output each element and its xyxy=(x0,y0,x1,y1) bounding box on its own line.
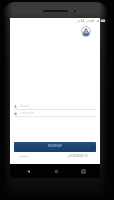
button[interactable]: ¿OLVIDASTE TU CONTRASEÑA? xyxy=(64,154,92,158)
staticText: REGISTRATE xyxy=(19,154,29,158)
button[interactable]: Recent apps xyxy=(79,167,87,175)
button[interactable]: INGRESAR xyxy=(14,142,96,152)
staticText: INGRESAR xyxy=(48,144,62,148)
button[interactable]: Back xyxy=(24,167,32,175)
staticText: Contraseña xyxy=(20,111,34,115)
button[interactable]: Usuario xyxy=(14,103,96,110)
staticText: ¿OLVIDASTE TU CONTRASEÑA? xyxy=(64,154,92,158)
button[interactable]: Contraseña xyxy=(14,110,96,117)
button[interactable]: Home xyxy=(52,167,60,175)
button[interactable]: REGISTRATE xyxy=(19,154,29,158)
staticText: Usuario xyxy=(20,104,30,108)
